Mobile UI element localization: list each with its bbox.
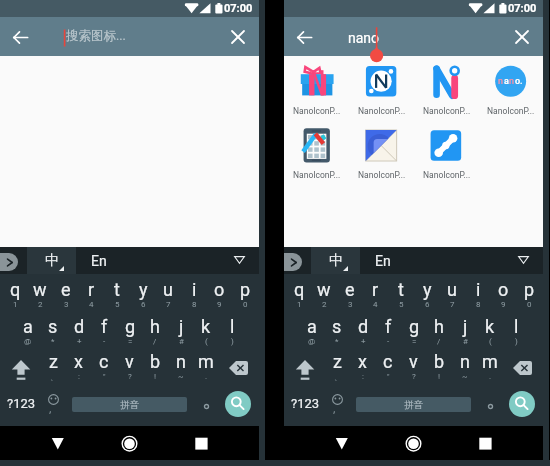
- button[interactable]: b: [142, 351, 168, 384]
- button[interactable]: f: [91, 316, 117, 349]
- button[interactable]: p: [232, 279, 258, 312]
- button[interactable]: Recent apps: [471, 426, 499, 460]
- button[interactable]: j: [168, 316, 194, 349]
- button[interactable]: x: [349, 351, 375, 384]
- button[interactable]: r: [78, 279, 104, 312]
- button[interactable]: f: [375, 316, 401, 349]
- button[interactable]: a: [299, 316, 325, 349]
- staticText: 、: [50, 372, 58, 382]
- button[interactable]: Clear search: [225, 24, 251, 50]
- staticText: g: [125, 316, 136, 337]
- button[interactable]: x: [65, 351, 91, 384]
- button[interactable]: d: [350, 316, 376, 349]
- button[interactable]: Hide keyboard: [234, 256, 245, 264]
- button[interactable]: j: [452, 316, 478, 349]
- button[interactable]: Emoji: [328, 390, 346, 408]
- button[interactable]: Back: [6, 23, 34, 51]
- button[interactable]: y: [130, 279, 156, 312]
- button[interactable]: Home: [115, 426, 143, 460]
- button[interactable]: h: [142, 316, 168, 349]
- button[interactable]: Shift: [6, 355, 36, 383]
- button[interactable]: Expand toolbar: [284, 253, 302, 271]
- button[interactable]: u: [155, 279, 181, 312]
- button[interactable]: e: [337, 279, 363, 312]
- button[interactable]: Back: [328, 426, 356, 460]
- button[interactable]: i: [465, 279, 491, 312]
- button[interactable]: z: [40, 351, 66, 384]
- button[interactable]: Back: [290, 23, 318, 51]
- button[interactable]: g: [401, 316, 427, 349]
- button[interactable]: Search: [509, 391, 535, 417]
- button[interactable]: t: [388, 279, 414, 312]
- button[interactable]: n: [452, 351, 478, 384]
- button[interactable]: z: [324, 351, 350, 384]
- button[interactable]: y: [414, 279, 440, 312]
- button[interactable]: NanoIconP...: [414, 168, 479, 181]
- button[interactable]: s: [40, 316, 66, 349]
- staticText: :: [78, 372, 80, 381]
- button[interactable]: Emoji: [44, 390, 62, 408]
- button[interactable]: NanoIconP...: [284, 104, 349, 117]
- button[interactable]: Search: [225, 391, 251, 417]
- button[interactable]: p: [516, 279, 542, 312]
- button[interactable]: v: [116, 351, 142, 384]
- button[interactable]: d: [66, 316, 92, 349]
- button[interactable]: n: [168, 351, 194, 384]
- button[interactable]: [311, 247, 360, 274]
- button[interactable]: Clear search: [509, 24, 535, 50]
- button[interactable]: c: [375, 351, 401, 384]
- button[interactable]: u: [439, 279, 465, 312]
- staticText: ?123: [291, 396, 320, 411]
- button[interactable]: Expand toolbar: [0, 253, 18, 271]
- button[interactable]: b: [426, 351, 452, 384]
- button[interactable]: o: [490, 279, 516, 312]
- button[interactable]: 拼音: [72, 397, 187, 412]
- button[interactable]: NanoIconP...: [478, 104, 543, 117]
- staticText: s: [48, 316, 58, 337]
- button[interactable]: Backspace: [513, 361, 532, 375]
- button[interactable]: Back: [44, 426, 72, 460]
- button[interactable]: Backspace: [229, 361, 248, 375]
- button[interactable]: NanoIconP...: [414, 104, 479, 117]
- button[interactable]: o: [206, 279, 232, 312]
- button[interactable]: [27, 247, 76, 274]
- button[interactable]: En: [91, 253, 107, 269]
- button[interactable]: Recent apps: [187, 426, 215, 460]
- button[interactable]: a: [15, 316, 41, 349]
- button[interactable]: 拼音: [356, 397, 471, 412]
- button[interactable]: m: [477, 351, 503, 384]
- button[interactable]: c: [91, 351, 117, 384]
- staticText: 1: [13, 300, 18, 309]
- button[interactable]: q: [286, 279, 312, 312]
- button[interactable]: Hide keyboard: [518, 256, 529, 264]
- button[interactable]: g: [117, 316, 143, 349]
- button[interactable]: Home: [399, 426, 427, 460]
- button[interactable]: NanoIconP...: [284, 168, 349, 181]
- button[interactable]: l: [219, 316, 245, 349]
- button[interactable]: k: [477, 316, 503, 349]
- button[interactable]: t: [104, 279, 130, 312]
- staticText: nano: [348, 30, 380, 46]
- button[interactable]: k: [193, 316, 219, 349]
- button[interactable]: r: [362, 279, 388, 312]
- button[interactable]: NanoIconP...: [349, 104, 414, 117]
- button[interactable]: h: [426, 316, 452, 349]
- button[interactable]: En: [375, 253, 391, 269]
- button[interactable]: v: [400, 351, 426, 384]
- button[interactable]: w: [27, 279, 53, 312]
- button[interactable]: NanoIconP...: [349, 168, 414, 181]
- button[interactable]: w: [311, 279, 337, 312]
- button[interactable]: i: [181, 279, 207, 312]
- button[interactable]: ?123: [6, 393, 36, 413]
- button[interactable]: Shift: [290, 355, 320, 383]
- button[interactable]: e: [53, 279, 79, 312]
- button[interactable]: ?123: [290, 393, 320, 413]
- button[interactable]: l: [503, 316, 529, 349]
- staticText: 8: [476, 300, 481, 309]
- button[interactable]: 中: [27, 247, 76, 274]
- button[interactable]: 中: [311, 247, 360, 274]
- staticText: v: [125, 351, 134, 372]
- button[interactable]: s: [324, 316, 350, 349]
- button[interactable]: m: [193, 351, 219, 384]
- button[interactable]: q: [2, 279, 28, 312]
